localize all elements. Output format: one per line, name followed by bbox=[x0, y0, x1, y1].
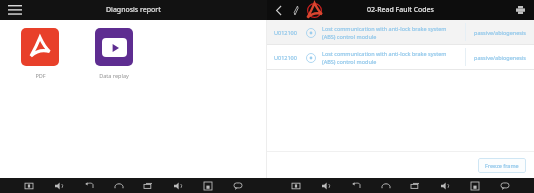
staticText: Diagnosis report bbox=[106, 5, 161, 15]
button[interactable]: Print bbox=[513, 3, 527, 17]
button[interactable]: Chat bbox=[231, 179, 245, 193]
staticText: passive/abiogenesis bbox=[474, 54, 526, 61]
button[interactable]: Screenshot bbox=[22, 179, 36, 193]
button[interactable]: PDF bbox=[14, 28, 66, 79]
staticText: Data replay bbox=[99, 72, 129, 79]
staticText: U012100 bbox=[274, 29, 297, 36]
staticText: (ABS) control module bbox=[322, 58, 377, 65]
button[interactable]: Volume down bbox=[319, 179, 333, 193]
button[interactable]: Apps bbox=[468, 179, 482, 193]
button[interactable]: Chat bbox=[498, 179, 512, 193]
staticText: (ABS) control module bbox=[322, 33, 377, 40]
button[interactable]: U012100 bbox=[267, 45, 534, 69]
staticText: 02-Read Fault Codes bbox=[367, 5, 434, 15]
button[interactable]: Menu bbox=[6, 2, 24, 18]
other: Fault detail bbox=[305, 27, 316, 38]
staticText: Lost communication with anti-lock brake … bbox=[322, 25, 447, 32]
button[interactable]: Recents bbox=[141, 179, 155, 193]
button[interactable]: Data replay bbox=[88, 28, 140, 79]
button[interactable]: Recents bbox=[408, 179, 422, 193]
button[interactable]: Volume up bbox=[438, 179, 452, 193]
button[interactable]: Home bbox=[112, 179, 126, 193]
button[interactable]: U012100 bbox=[267, 20, 534, 44]
staticText: U012100 bbox=[274, 54, 297, 61]
staticText: passive/abiogenesis bbox=[474, 29, 526, 36]
button[interactable]: Back bbox=[349, 179, 363, 193]
other: Fault detail bbox=[305, 52, 316, 63]
button[interactable]: Freeze frame bbox=[478, 158, 526, 173]
button[interactable]: Back bbox=[82, 179, 96, 193]
button[interactable]: Volume down bbox=[52, 179, 66, 193]
staticText: Lost communication with anti-lock brake … bbox=[322, 50, 447, 57]
button[interactable]: Volume up bbox=[171, 179, 185, 193]
staticText: PDF bbox=[35, 72, 46, 79]
staticText: Freeze frame bbox=[485, 162, 519, 169]
button[interactable]: Screenshot bbox=[289, 179, 303, 193]
button[interactable]: Home bbox=[379, 179, 393, 193]
button[interactable]: Apps bbox=[201, 179, 215, 193]
button[interactable]: Export PDF bbox=[306, 2, 322, 18]
button[interactable]: Edit bbox=[289, 3, 303, 17]
button[interactable]: Back bbox=[272, 3, 286, 17]
